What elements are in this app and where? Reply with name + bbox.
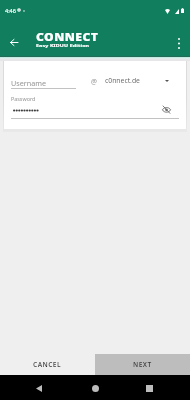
button[interactable]: Navigate up xyxy=(0,28,28,56)
button[interactable]: Select domain xyxy=(156,70,178,92)
staticText: @ xyxy=(91,77,97,86)
staticText: c0nnect.de xyxy=(105,76,140,85)
button[interactable]: Recent apps xyxy=(137,376,161,400)
button[interactable]: Back xyxy=(27,376,51,400)
button[interactable]: Show password xyxy=(155,98,177,120)
button[interactable]: More options xyxy=(165,29,190,57)
button[interactable]: CANCEL xyxy=(0,354,95,375)
staticText: CONNECT xyxy=(36,30,99,44)
staticText: Easy KIDUU Edition xyxy=(36,43,89,48)
staticText: NEXT xyxy=(133,360,152,369)
staticText: 4:46 xyxy=(5,7,16,14)
staticText: Password xyxy=(11,95,36,102)
staticText: CANCEL xyxy=(33,360,62,369)
button[interactable]: Home xyxy=(83,376,107,400)
button[interactable]: NEXT xyxy=(95,354,190,375)
staticText: Username xyxy=(11,78,46,88)
